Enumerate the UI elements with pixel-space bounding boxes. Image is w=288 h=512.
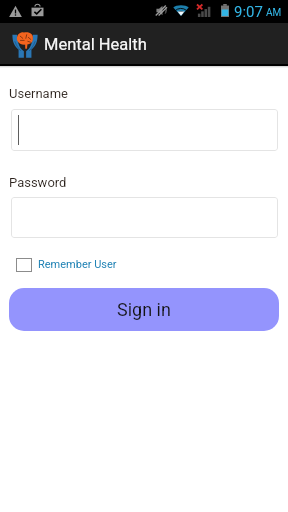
staticText: AM [266, 7, 282, 19]
button[interactable]: Sign in [9, 288, 279, 331]
staticText: Sign in [117, 299, 171, 320]
staticText: Remember User [38, 258, 117, 271]
button[interactable] [11, 197, 278, 238]
button[interactable] [11, 109, 278, 151]
staticText: Mental Health [44, 35, 147, 54]
button[interactable]: Remember User [16, 256, 117, 273]
button[interactable]: Mental Health, home [0, 23, 288, 64]
staticText: Username [9, 86, 68, 101]
staticText: 9:07 [234, 3, 263, 21]
staticText: Password [9, 175, 67, 190]
